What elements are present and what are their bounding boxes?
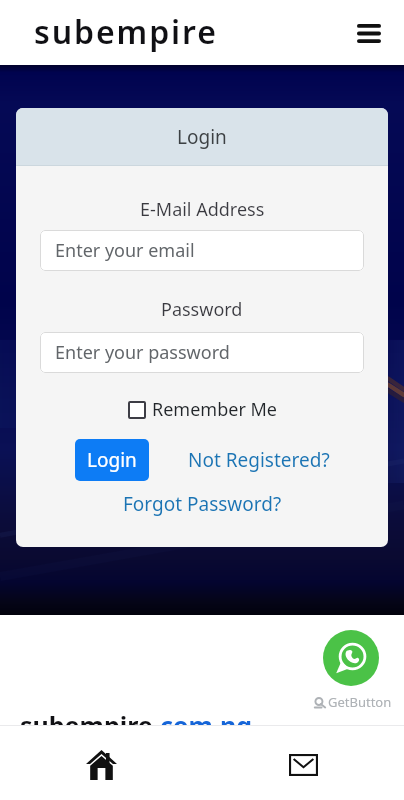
staticText: Login [177, 124, 227, 150]
staticText: Not Registered? [188, 447, 330, 473]
staticText: E-Mail Address [140, 197, 265, 222]
staticText: subempire [34, 10, 218, 54]
staticText: subempire [20, 708, 153, 742]
button[interactable]: Not Registered? [188, 447, 330, 473]
staticText: Enter your email [55, 238, 195, 263]
button[interactable]: Remember Me [128, 397, 277, 422]
staticText: GetButton [328, 693, 392, 711]
staticText: .com.ng [153, 708, 253, 742]
staticText: Enter your password [55, 340, 230, 365]
button[interactable]: Enter your email [40, 230, 364, 271]
button[interactable]: Open menu [347, 11, 391, 55]
staticText: Forgot Password? [123, 491, 282, 517]
staticText: Login [87, 447, 137, 473]
button[interactable]: Home [0, 726, 202, 800]
button[interactable]: Enter your password [40, 332, 364, 373]
staticText: Password [161, 297, 243, 322]
button[interactable]: Chat on WhatsApp [323, 630, 379, 686]
staticText: Remember Me [152, 397, 277, 422]
button[interactable]: Mail [202, 726, 404, 800]
button[interactable]: Login [75, 439, 149, 481]
button[interactable]: Forgot Password? [123, 491, 282, 517]
